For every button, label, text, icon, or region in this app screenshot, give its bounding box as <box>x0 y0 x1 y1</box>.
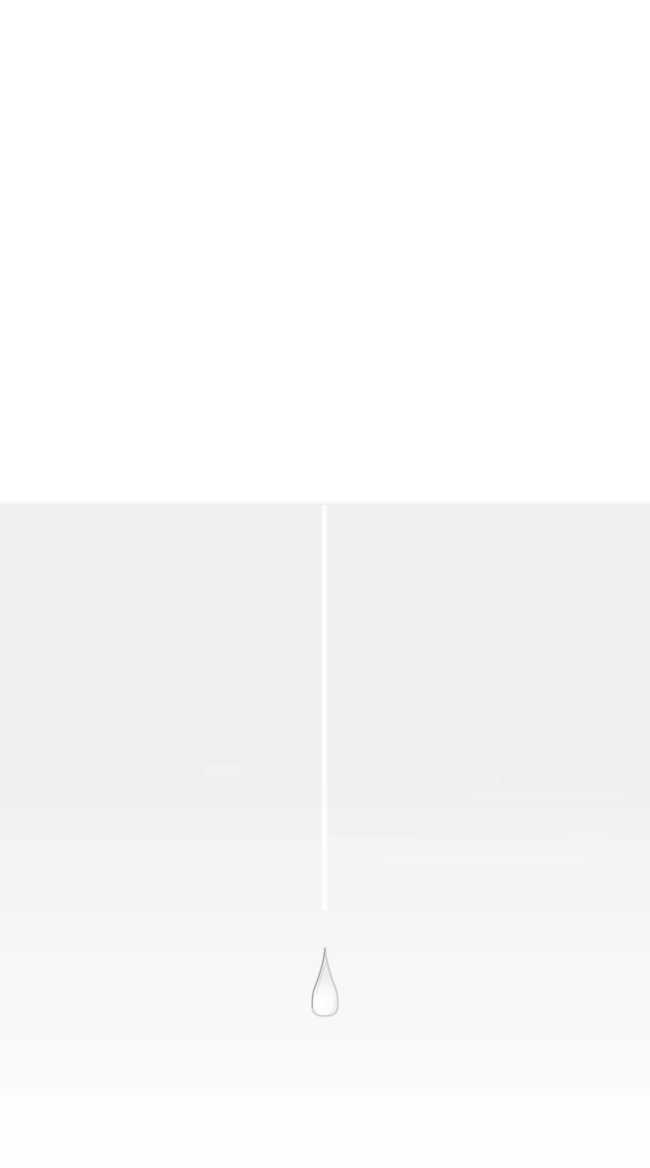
other: Water drop <box>311 946 339 1018</box>
